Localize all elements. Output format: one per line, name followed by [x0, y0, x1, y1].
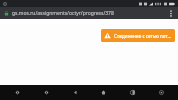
button[interactable]: Site information: [3, 10, 9, 16]
button[interactable]: Volume down: [5, 85, 29, 100]
button[interactable]: More options: [167, 7, 175, 19]
button[interactable]: Screenshot: [149, 85, 173, 100]
button[interactable]: Соединение с сетью потеряно: [101, 29, 175, 42]
staticText: Соединение с сетью потеряно: [114, 33, 172, 39]
button[interactable]: gs.mos.ru/assignments/octyr/progress/378: [12, 10, 167, 17]
button[interactable]: Back: [63, 85, 87, 100]
button[interactable]: Volume up: [34, 85, 58, 100]
button[interactable]: Home: [91, 85, 115, 100]
button[interactable]: Recent apps: [120, 85, 144, 100]
